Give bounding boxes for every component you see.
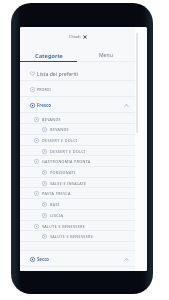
button[interactable]: PORZIONATI [20, 167, 135, 178]
button[interactable]: SALUTE E BENESSERE [20, 231, 135, 242]
staticText: BEVANDE [42, 117, 61, 122]
staticText: Menu [99, 52, 113, 59]
button[interactable]: LISCIA [20, 210, 135, 221]
staticText: BEVANDE [50, 127, 69, 132]
other: Close [83, 35, 87, 39]
button[interactable]: Menu [77, 46, 135, 61]
button[interactable]: Chiudi [66, 32, 90, 41]
button[interactable]: Fresco [20, 97, 135, 113]
button[interactable]: SALSE E INSALATE [20, 178, 135, 188]
staticText: PASTA FRESCA [42, 191, 71, 196]
button[interactable]: BASI [20, 199, 135, 210]
other: Collapse [124, 257, 129, 262]
staticText: Chiudi [69, 34, 81, 39]
staticText: Secco [37, 256, 50, 262]
staticText: BASI [50, 202, 60, 207]
button[interactable]: SALUTE E BENESSERE [20, 221, 135, 231]
staticText: DESSERT E DOLCI [42, 138, 78, 143]
button[interactable]: GASTRONOMIA PRONTA [20, 156, 135, 167]
button[interactable]: BEVANDE [20, 124, 135, 135]
button[interactable]: DESSERT E DOLCI [20, 135, 135, 146]
button[interactable]: BEVANDE [20, 114, 135, 124]
button[interactable]: PASTA FRESCA [20, 188, 135, 199]
button[interactable]: DESSERT E DOLCI [20, 146, 135, 156]
staticText: DESSERT E DOLCI [50, 149, 86, 154]
staticText: SALUTE E BENESSERE [50, 234, 94, 239]
button[interactable]: Secco [20, 251, 135, 267]
button[interactable]: PROMO [20, 81, 135, 97]
button[interactable]: Lista dei preferiti [20, 65, 135, 81]
button[interactable]: Categorie [20, 46, 77, 61]
other: Collapse [124, 103, 129, 108]
staticText: Lista dei preferiti [37, 70, 79, 77]
staticText: LISCIA [50, 213, 64, 218]
staticText: GASTRONOMIA PRONTA [42, 159, 91, 164]
staticText: Categorie [35, 52, 63, 60]
staticText: SALSE E INSALATE [50, 181, 87, 186]
staticText: SALUTE E BENESSERE [42, 224, 86, 229]
staticText: PROMO [37, 87, 51, 92]
staticText: Fresco [37, 102, 51, 108]
staticText: PORZIONATI [50, 170, 76, 175]
